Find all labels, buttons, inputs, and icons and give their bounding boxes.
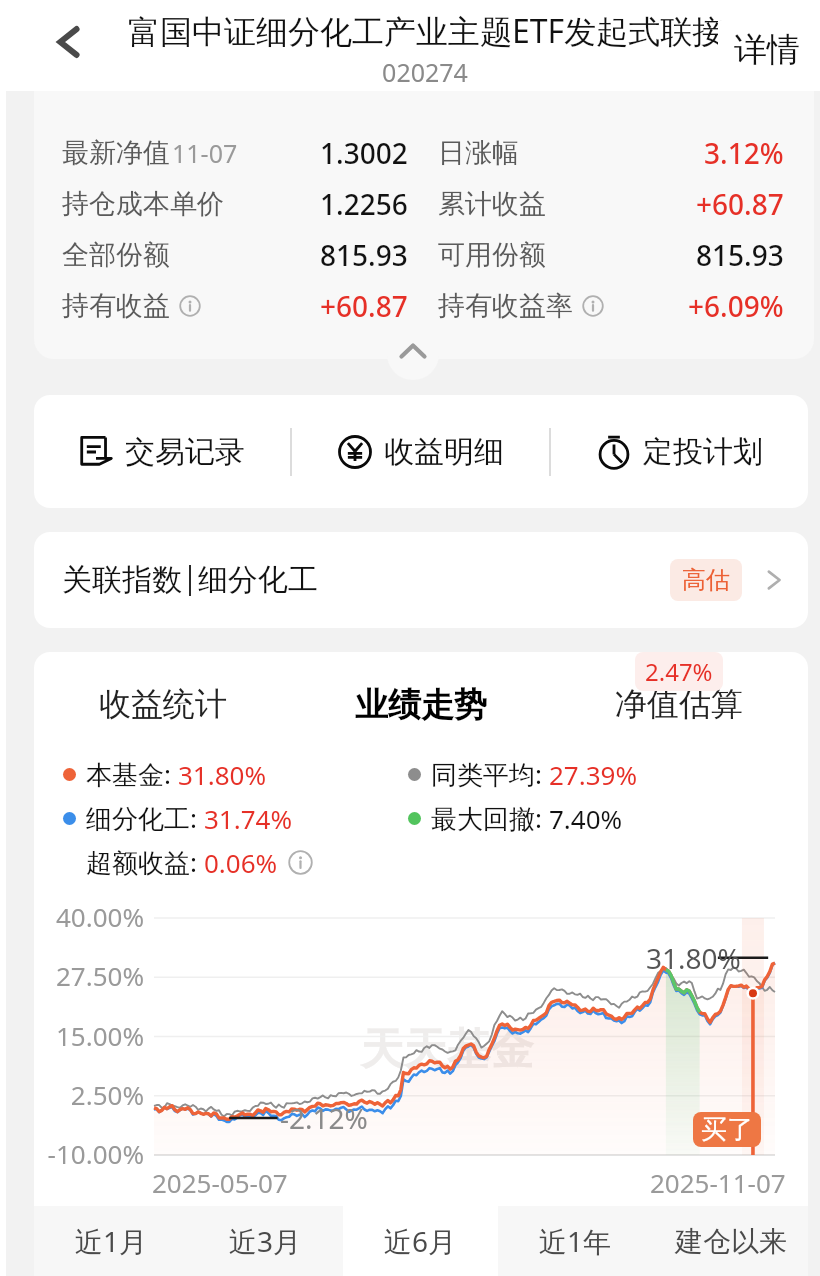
button[interactable]: 近1月 xyxy=(34,1206,188,1276)
button[interactable]: 近6月 xyxy=(343,1206,498,1276)
staticText: 业绩走势 xyxy=(355,684,487,726)
staticText: 富国中证细分化工产业主题ETF发起式联接 xyxy=(128,9,722,53)
staticText: 40.00% xyxy=(34,899,144,934)
staticText: 1.2256 xyxy=(320,185,408,223)
staticText: 27.39% xyxy=(549,757,638,792)
staticText: 最新净值 xyxy=(62,136,170,170)
staticText: 详情 xyxy=(734,29,800,71)
staticText: 近1年 xyxy=(539,1222,612,1260)
staticText: 2.50% xyxy=(34,1077,144,1112)
staticText: 累计收益 xyxy=(438,187,546,221)
staticText: 可用份额 xyxy=(438,238,546,272)
button[interactable]: 关联指数 xyxy=(34,532,808,628)
staticText: 收益统计 xyxy=(99,684,227,724)
button[interactable]: Collapse details xyxy=(387,338,439,380)
staticText: 815.93 xyxy=(320,236,408,274)
button[interactable]: 交易记录 xyxy=(34,395,290,508)
staticText: 近3月 xyxy=(229,1222,302,1260)
staticText: 高估 xyxy=(682,565,730,595)
staticText: 0.06% xyxy=(204,845,278,880)
staticText: 31.80% xyxy=(178,757,267,792)
staticText: 3.12% xyxy=(704,134,784,172)
staticText: -2.12% xyxy=(280,1099,368,1137)
staticText: 超额收益: xyxy=(86,844,204,880)
staticText: 2.47% xyxy=(645,655,713,688)
button[interactable]: 净值估算 xyxy=(550,670,808,734)
staticText: 天天基金 xyxy=(361,1023,533,1077)
staticText: 买了 xyxy=(701,1113,753,1146)
staticText: 同类平均: xyxy=(431,756,549,792)
staticText: 1.3002 xyxy=(320,134,408,172)
staticText: 27.50% xyxy=(34,958,144,993)
staticText: 11-07 xyxy=(172,136,238,170)
staticText: 全部份额 xyxy=(62,238,170,272)
staticText: 交易记录 xyxy=(125,433,245,471)
button[interactable]: 定投计划 xyxy=(551,395,808,508)
button[interactable]: 详情 xyxy=(734,29,800,71)
staticText: +60.87 xyxy=(320,287,408,325)
staticText: 7.40% xyxy=(549,801,623,836)
staticText: 定投计划 xyxy=(643,433,763,471)
staticText: 31.74% xyxy=(204,801,293,836)
staticText: 近6月 xyxy=(384,1222,457,1260)
staticText: 日涨幅 xyxy=(438,136,519,170)
button[interactable]: Back xyxy=(42,15,96,69)
staticText: +6.09% xyxy=(688,287,784,325)
staticText: 020274 xyxy=(128,55,722,89)
staticText: 持有收益 xyxy=(62,289,170,323)
staticText: 细分化工 xyxy=(198,561,318,599)
staticText: 近1月 xyxy=(75,1222,148,1260)
staticText: 815.93 xyxy=(696,236,784,274)
staticText: 2025-11-07 xyxy=(650,1165,786,1200)
staticText: -10.00% xyxy=(34,1136,144,1171)
staticText: 31.80% xyxy=(646,939,741,977)
staticText: 收益明细 xyxy=(384,433,504,471)
button[interactable]: 收益明细 xyxy=(292,395,549,508)
staticText: 2025-05-07 xyxy=(152,1165,288,1200)
staticText: 本基金: xyxy=(86,756,178,792)
staticText: 净值估算 xyxy=(615,684,743,724)
button[interactable]: 近3月 xyxy=(188,1206,343,1276)
staticText: 持有收益率 xyxy=(438,289,573,323)
staticText: 15.00% xyxy=(34,1018,144,1053)
staticText: 关联指数 xyxy=(62,561,182,599)
button[interactable]: 买了 xyxy=(701,1113,753,1146)
staticText: 建仓以来 xyxy=(675,1224,787,1259)
staticText: 持仓成本单价 xyxy=(62,187,224,221)
button[interactable]: 业绩走势 xyxy=(292,670,550,734)
button[interactable]: 收益统计 xyxy=(34,670,292,734)
staticText: 细分化工: xyxy=(86,800,204,836)
staticText: +60.87 xyxy=(696,185,784,223)
button[interactable]: 近1年 xyxy=(498,1206,653,1276)
button[interactable]: 建仓以来 xyxy=(653,1206,808,1276)
staticText: 最大回撤: xyxy=(431,800,549,836)
